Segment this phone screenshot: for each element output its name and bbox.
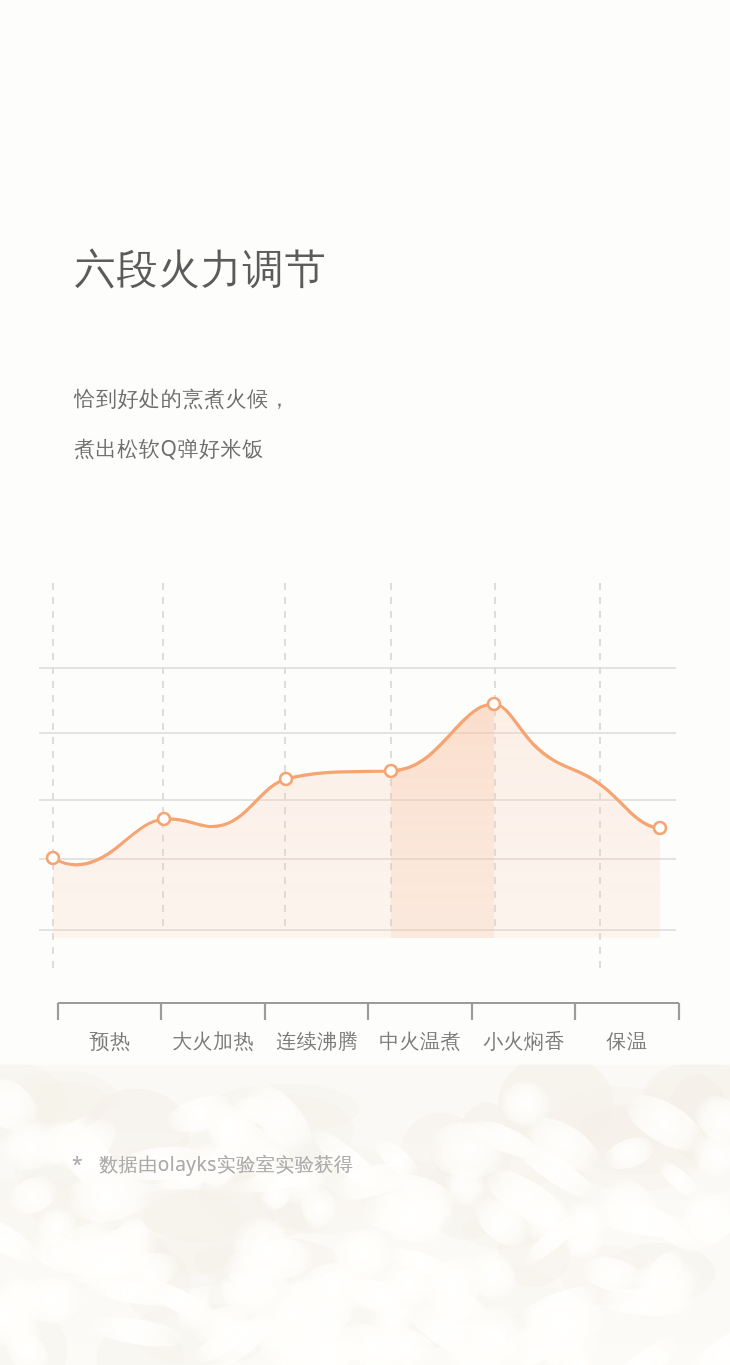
button[interactable]: 保温	[557, 1029, 697, 1365]
staticText: 预热	[40, 1029, 180, 1365]
button[interactable]: 中火温煮	[350, 1029, 490, 1365]
staticText: 保温	[557, 1029, 697, 1365]
button[interactable]: 预热	[40, 1029, 180, 1365]
staticText: 连续沸腾	[247, 1029, 387, 1365]
staticText: * 数据由olayks实验室实验获得	[72, 1151, 354, 1177]
staticText: 小火焖香	[454, 1029, 594, 1365]
staticText: 大火加热	[143, 1029, 283, 1365]
staticText: 六段火力调节	[74, 244, 326, 296]
button[interactable]: 大火加热	[143, 1029, 283, 1365]
button[interactable]: 小火焖香	[454, 1029, 594, 1365]
staticText: 恰到好处的烹煮火候，	[74, 386, 290, 412]
staticText: 中火温煮	[350, 1029, 490, 1365]
button[interactable]: 连续沸腾	[247, 1029, 387, 1365]
staticText: 煮出松软Q弹好米饭	[74, 434, 264, 463]
